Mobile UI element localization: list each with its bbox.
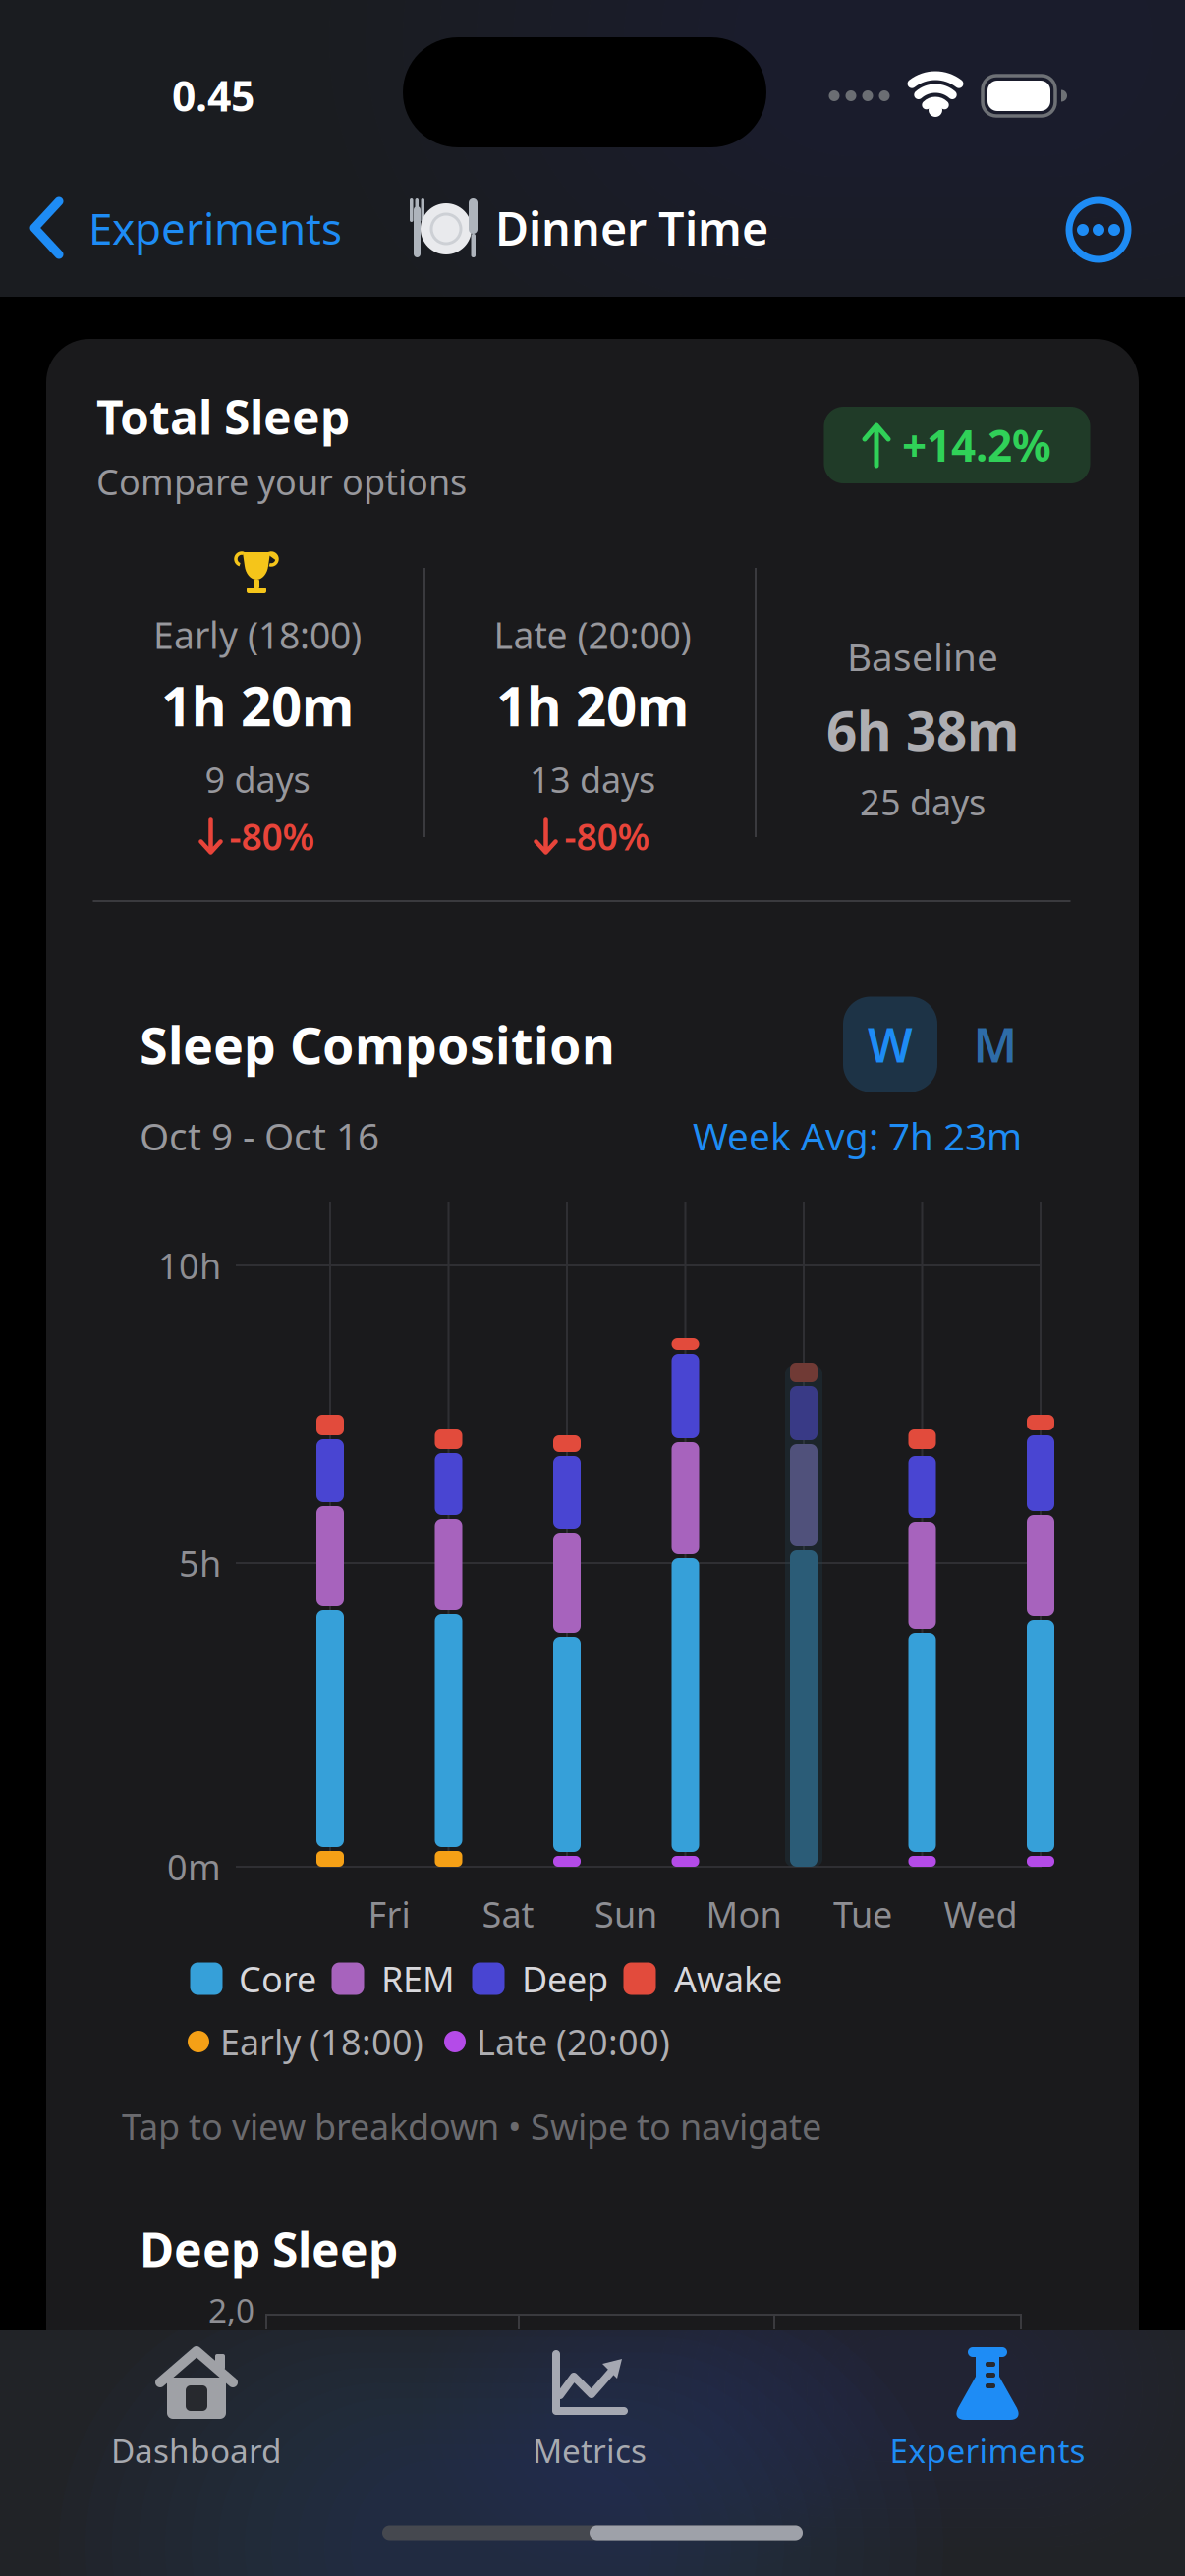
staticText: Baseline — [847, 631, 998, 681]
button[interactable]: Dashboard — [29, 2326, 364, 2484]
staticText: 5h — [179, 1540, 221, 1587]
staticText: -80% — [229, 812, 315, 860]
staticText: Early (18:00) — [220, 2018, 423, 2065]
staticText: Tue — [833, 1890, 892, 1937]
staticText: Sat — [482, 1890, 534, 1937]
button[interactable]: M — [948, 997, 1043, 1092]
staticText: Core — [239, 1955, 316, 2002]
staticText: Total Sleep — [96, 385, 350, 448]
button[interactable]: Metrics — [423, 2326, 757, 2484]
staticText: Deep Sleep — [140, 2218, 398, 2280]
staticText: 13 days — [530, 756, 655, 803]
button[interactable] — [1054, 186, 1143, 274]
staticText: Metrics — [533, 2429, 647, 2472]
staticText: Sleep Composition — [140, 1010, 615, 1078]
staticText: 6h 38m — [826, 694, 1019, 766]
staticText: Dinner Time — [495, 197, 768, 258]
staticText: Fri — [368, 1890, 410, 1937]
staticText: Late (20:00) — [494, 610, 691, 659]
staticText: Wed — [944, 1890, 1017, 1937]
staticText: 0.45 — [172, 67, 254, 123]
staticText: Awake — [674, 1955, 782, 2002]
staticText: Sun — [594, 1890, 657, 1937]
staticText: Week Avg: 7h 23m — [693, 1110, 1022, 1161]
staticText: Deep — [522, 1955, 608, 2002]
staticText: Dashboard — [111, 2429, 282, 2472]
button[interactable]: W — [843, 997, 937, 1092]
staticText: +14.2% — [902, 416, 1051, 474]
staticText: Oct 9 - Oct 16 — [140, 1110, 379, 1161]
staticText: Tap to view breakdown • Swipe to navigat… — [122, 2103, 821, 2150]
staticText: 1h 20m — [496, 670, 689, 741]
staticText: Experiments — [88, 199, 342, 257]
staticText: 0m — [167, 1843, 221, 1890]
staticText: 9 days — [205, 756, 310, 803]
staticText: W — [868, 1013, 913, 1076]
staticText: Late (20:00) — [477, 2018, 670, 2065]
staticText: Experiments — [890, 2429, 1085, 2472]
staticText: -80% — [564, 812, 650, 860]
staticText: Mon — [706, 1890, 782, 1937]
staticText: 10h — [158, 1242, 221, 1289]
button[interactable]: Experiments — [820, 2326, 1155, 2484]
staticText: 25 days — [860, 778, 986, 825]
button[interactable]: Experiments — [20, 181, 383, 275]
staticText: REM — [381, 1955, 455, 2002]
staticText: Early (18:00) — [153, 610, 362, 659]
staticText: Compare your options — [96, 458, 467, 505]
staticText: 2,0 — [208, 2288, 254, 2332]
staticText: 1h 20m — [161, 670, 354, 741]
staticText: M — [973, 1013, 1017, 1076]
